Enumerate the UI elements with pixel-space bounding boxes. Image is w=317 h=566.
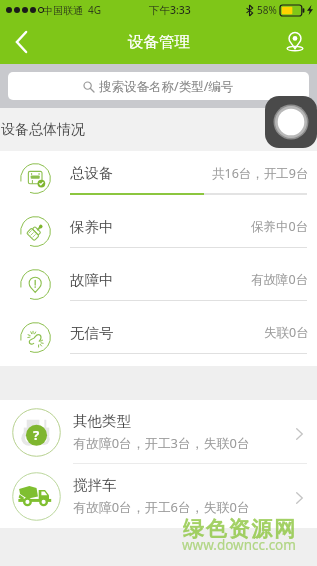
- staticText: 绿色资源网: [182, 516, 296, 542]
- staticText: 有故障0台: [251, 271, 309, 288]
- staticText: 有故障0台，开工3台，失联0台: [73, 434, 250, 452]
- staticText: 保养中0台: [251, 218, 309, 235]
- staticText: 下午3:33: [149, 3, 191, 17]
- button[interactable]: ?: [0, 400, 317, 464]
- button[interactable]: 无信号: [0, 301, 317, 354]
- button[interactable]: 保养中: [0, 195, 317, 248]
- staticText: 保养中: [70, 218, 114, 236]
- staticText: 无信号: [70, 324, 114, 342]
- staticText: ?: [33, 426, 40, 444]
- button[interactable]: 搅拌车: [0, 464, 317, 528]
- staticText: 共16台，开工9台: [212, 165, 309, 182]
- staticText: 总设备: [70, 164, 114, 182]
- staticText: 4G: [88, 3, 101, 17]
- staticText: 有故障0台，开工6台，失联0台: [73, 498, 250, 516]
- staticText: 故障中: [70, 271, 114, 289]
- staticText: 中国联通: [43, 4, 83, 17]
- staticText: 其他类型: [73, 412, 131, 430]
- staticText: 搜索设备名称/类型/编号: [99, 78, 234, 95]
- button[interactable]: 故障中: [0, 248, 317, 301]
- button[interactable]: 总设备: [0, 151, 317, 195]
- button[interactable]: 地图定位: [273, 20, 317, 64]
- staticText: 搅拌车: [73, 476, 117, 494]
- button[interactable]: 搜索设备名称/类型/编号: [8, 72, 309, 100]
- button[interactable]: 返回: [0, 20, 42, 64]
- staticText: 失联0台: [264, 324, 309, 341]
- button[interactable]: 辅助触控: [265, 96, 317, 148]
- staticText: 设备管理: [128, 32, 190, 52]
- staticText: 58%: [257, 3, 277, 17]
- staticText: www.downcc.com: [182, 536, 296, 554]
- staticText: 设备总体情况: [1, 121, 85, 139]
